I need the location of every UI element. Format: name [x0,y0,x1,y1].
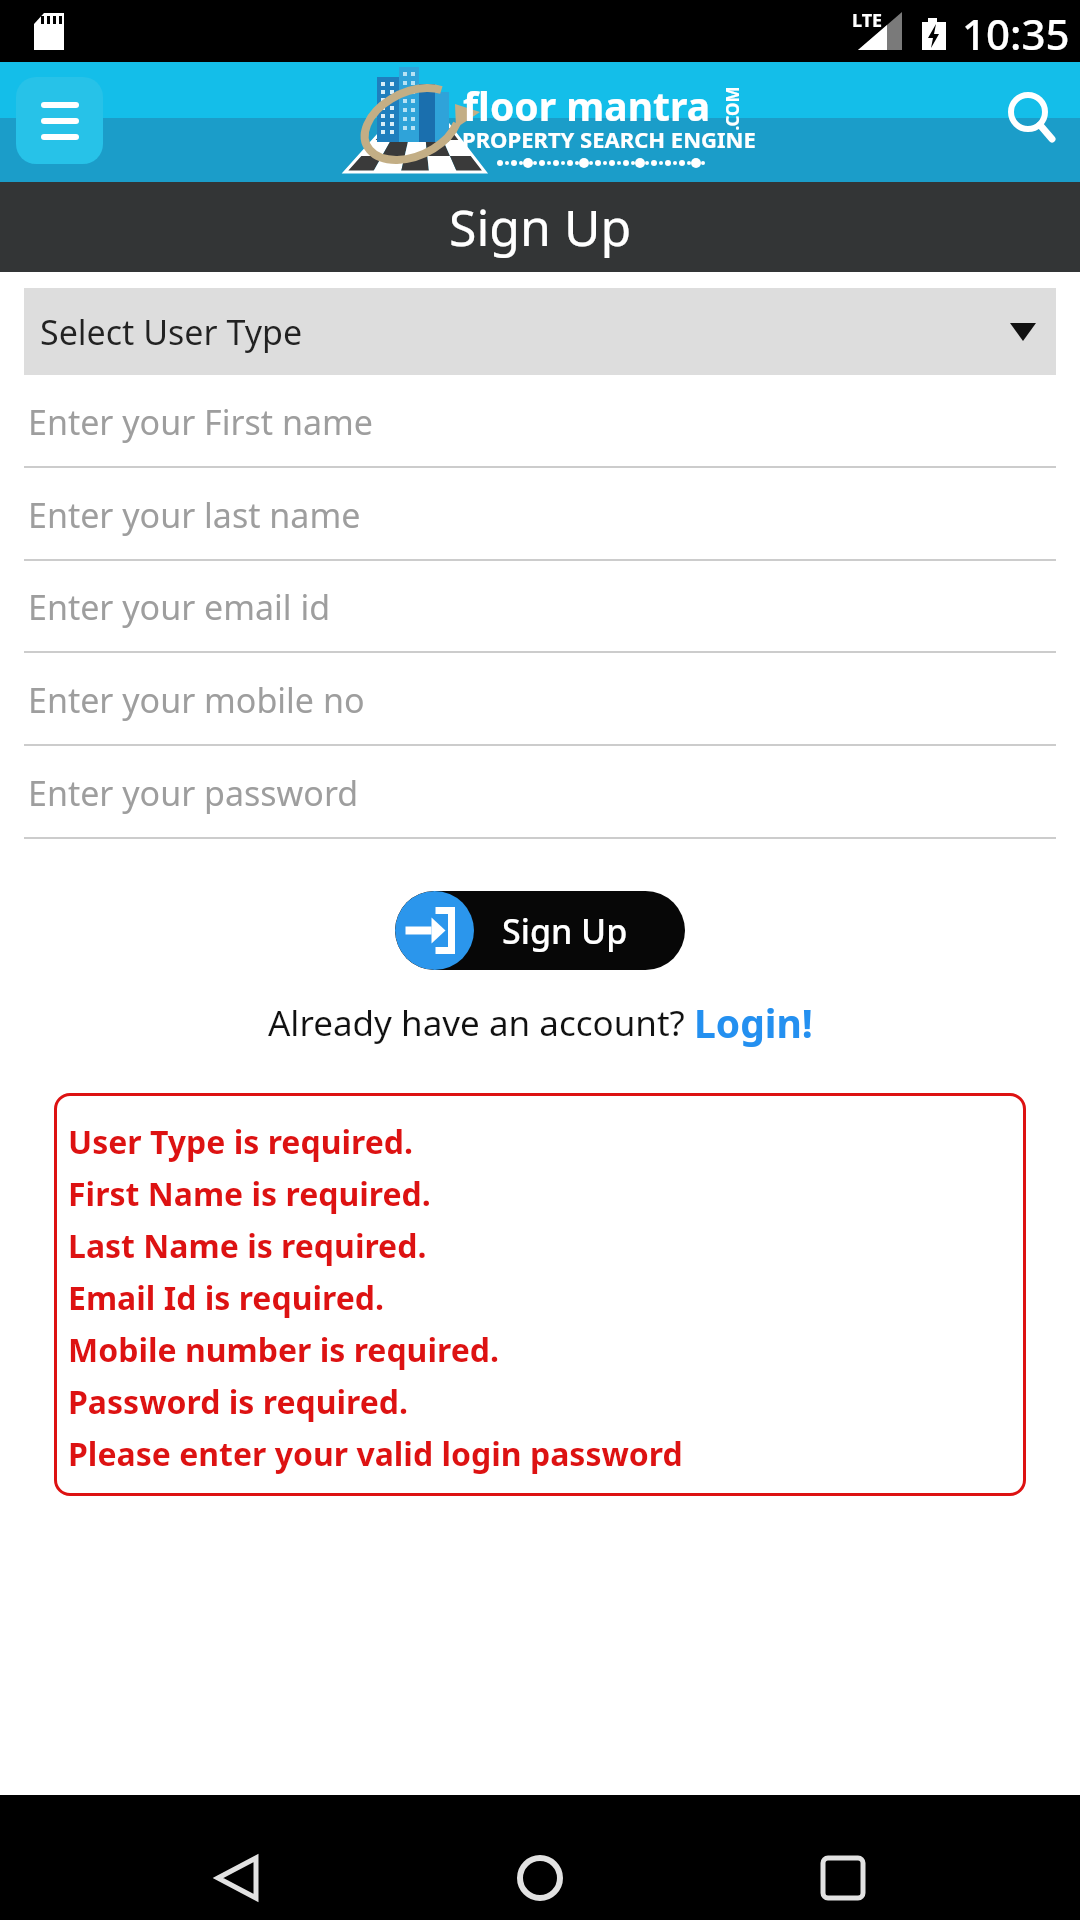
button[interactable] [16,77,103,164]
button[interactable] [196,1836,280,1920]
staticText: .COM [720,86,743,130]
button[interactable]: Select User Type [24,288,1056,375]
button[interactable] [998,90,1062,154]
staticText: Already have an account? [268,999,694,1047]
button[interactable]: Enter your mobile no [0,653,1080,746]
button[interactable]: Enter your First name [0,375,1080,468]
staticText: Sign Up [449,193,632,261]
staticText: Enter your mobile no [28,677,365,723]
staticText: floor mantra [463,79,710,132]
staticText: LTE [852,8,883,33]
staticText: Enter your First name [28,399,373,445]
staticText: 10:35 [962,5,1070,62]
staticText: Enter your password [28,770,359,816]
button[interactable] [801,1836,885,1920]
button[interactable]: Sign Up [395,891,685,970]
staticText: PROPERTY SEARCH ENGINE [462,124,756,154]
staticText: Login! [694,996,813,1049]
staticText: Enter your last name [28,492,361,538]
staticText: Sign Up [502,908,628,954]
button[interactable]: Enter your last name [0,468,1080,561]
staticText: User Type is required. First Name is req… [68,1120,683,1475]
button[interactable] [498,1836,582,1920]
button[interactable]: Enter your email id [0,561,1080,653]
staticText: Select User Type [40,309,303,355]
button[interactable]: Enter your password [0,746,1080,839]
button[interactable]: Already have an account? [0,996,1080,1049]
staticText: Enter your email id [28,584,331,630]
